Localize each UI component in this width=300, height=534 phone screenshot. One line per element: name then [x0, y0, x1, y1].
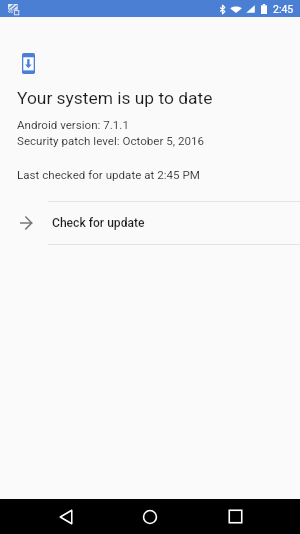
- button[interactable]: Back: [48, 499, 84, 534]
- staticText: Your system is up to date: [17, 88, 213, 108]
- staticText: Last checked for update at 2:45 PM: [17, 168, 200, 182]
- staticText: Check for update: [52, 216, 145, 230]
- staticText: Android version: 7.1.1: [17, 118, 129, 132]
- button[interactable]: Check for update: [0, 202, 300, 244]
- button[interactable]: Recents: [217, 499, 253, 534]
- staticText: 2:45: [273, 3, 294, 15]
- staticText: Security patch level: October 5, 2016: [17, 134, 204, 148]
- button[interactable]: Home: [132, 499, 168, 534]
